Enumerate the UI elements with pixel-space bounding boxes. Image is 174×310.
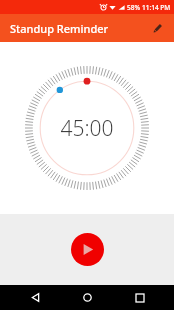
- staticText: 58%: [127, 3, 140, 12]
- button[interactable]: Start timer: [71, 233, 104, 266]
- staticText: 45:00: [60, 114, 114, 143]
- staticText: 11:14 PM: [142, 3, 171, 12]
- button[interactable]: Recent apps: [122, 285, 158, 310]
- button[interactable]: Edit: [147, 17, 169, 39]
- button[interactable]: Home: [69, 285, 105, 310]
- staticText: Standup Reminder: [10, 21, 109, 36]
- button[interactable]: Back: [17, 285, 53, 310]
